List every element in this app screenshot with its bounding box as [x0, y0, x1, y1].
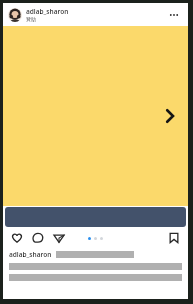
staticText: 贊助 [26, 16, 36, 22]
staticText: adlab_sharon [26, 7, 69, 16]
button[interactable]: Profile photo [3, 3, 188, 26]
staticText: adlab_sharon [9, 250, 52, 259]
button[interactable]: Save [165, 229, 183, 247]
button[interactable]: More options [166, 7, 182, 23]
button[interactable]: Profile photo [8, 8, 22, 22]
button[interactable]: Like [8, 229, 26, 247]
button[interactable]: Next image [160, 106, 180, 126]
button[interactable] [5, 207, 186, 227]
button[interactable]: Comment [29, 229, 47, 247]
button[interactable]: Next image [3, 26, 188, 206]
button[interactable]: Share [50, 229, 68, 247]
